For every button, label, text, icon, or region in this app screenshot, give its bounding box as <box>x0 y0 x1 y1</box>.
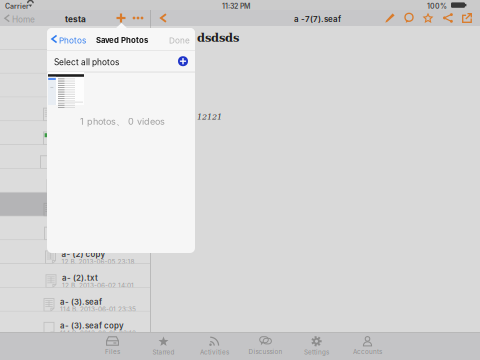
button[interactable]: Done <box>165 28 195 50</box>
button[interactable]: Star <box>420 10 436 26</box>
button[interactable]: Settings <box>291 332 342 360</box>
staticText: Done <box>169 35 190 45</box>
button[interactable]: 112.xlsx <box>0 145 150 169</box>
staticText: 210 B, 2013-06-05 23:18 <box>59 115 136 123</box>
button[interactable]: Files <box>87 332 138 360</box>
button[interactable]: Starred <box>138 332 189 360</box>
button[interactable]: Photos <box>47 28 91 50</box>
staticText: dsdsds <box>197 31 239 44</box>
staticText: Settings <box>304 348 329 356</box>
button[interactable]: a -7(7) <box>0 216 150 240</box>
staticText: a- (2) copy <box>61 249 105 259</box>
staticText: Discussion <box>248 348 282 356</box>
staticText: Photos <box>59 35 86 45</box>
staticText: Select all photos <box>54 57 119 67</box>
staticText: 1.txt <box>59 107 76 116</box>
button[interactable]: Photo <box>48 72 84 105</box>
staticText: Starred <box>152 348 174 356</box>
staticText: 12 B, 2013-06-05 23:18 <box>61 258 134 265</box>
button[interactable]: qq <box>0 26 150 50</box>
button[interactable]: Edit <box>382 10 398 26</box>
button[interactable]: a- (3).seaf <box>0 288 150 312</box>
staticText: Files <box>105 348 120 356</box>
staticText: 114 B, 2013-06-01 23:35 <box>60 305 136 313</box>
staticText: qq <box>92 40 102 50</box>
button[interactable]: Share <box>440 10 456 26</box>
staticText: 114 B, 2013-06-05 23:18 <box>60 329 136 337</box>
staticText: 12121 <box>197 112 222 121</box>
button[interactable]: a- (3).seaf copy <box>0 312 150 335</box>
button[interactable]: Discussion <box>240 332 291 360</box>
button[interactable]: Select all photos <box>47 51 195 72</box>
button[interactable]: Back <box>155 10 171 26</box>
staticText: a -7(7).seaf <box>294 14 341 24</box>
button[interactable]: sdsd <box>0 50 150 74</box>
button[interactable]: a- (2).txt <box>0 264 150 288</box>
staticText: 12 B, 2013-06-02 14:01 <box>62 282 134 289</box>
button[interactable]: Comments <box>401 10 417 26</box>
button[interactable]: a <box>0 169 150 193</box>
staticText: a- (3).seaf copy <box>60 321 124 330</box>
staticText: testa <box>65 14 86 24</box>
button[interactable]: a- (2) copy <box>0 240 150 264</box>
button[interactable]: Activities <box>189 332 240 360</box>
staticText: Activities <box>200 348 229 356</box>
staticText: Carrier <box>5 2 29 10</box>
button[interactable]: More <box>130 10 146 26</box>
staticText: Accounts <box>353 348 382 356</box>
staticText: a- (2).txt <box>62 273 98 283</box>
staticText: 100% <box>427 2 447 10</box>
staticText: Home <box>12 14 35 24</box>
button[interactable]: 1.txt <box>0 97 150 121</box>
staticText: a- (3).seaf <box>60 297 102 306</box>
staticText: 11:32 PM <box>222 2 250 10</box>
button[interactable]: Export <box>459 10 475 26</box>
button[interactable]: test <box>0 74 150 97</box>
button[interactable]: a -7(7) <box>0 193 150 216</box>
button[interactable]: Accounts <box>342 332 393 360</box>
button[interactable]: Add <box>113 10 129 26</box>
button[interactable]: Home <box>0 10 38 26</box>
staticText: 1 photos、 0 videos <box>80 116 165 127</box>
button[interactable]: 112.xlsx <box>0 121 150 145</box>
staticText: sdsd <box>89 64 107 74</box>
staticText: Saved Photos <box>96 35 148 45</box>
